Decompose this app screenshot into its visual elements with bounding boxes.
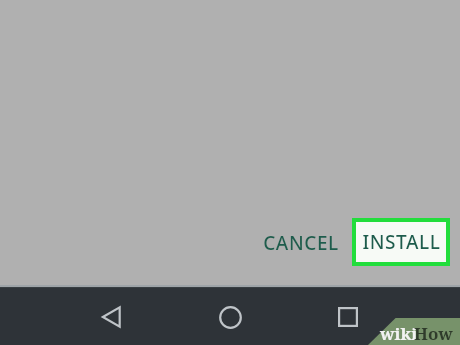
staticText: CANCEL: [263, 230, 339, 256]
button[interactable]: INSTALL: [352, 218, 450, 266]
staticText: How: [414, 322, 453, 345]
button[interactable]: Recent apps: [330, 299, 366, 335]
staticText: wiki: [380, 322, 418, 345]
button[interactable]: Home: [212, 299, 248, 335]
staticText: INSTALL: [362, 229, 441, 255]
button[interactable]: CANCEL: [254, 222, 348, 264]
button[interactable]: Back: [94, 299, 130, 335]
